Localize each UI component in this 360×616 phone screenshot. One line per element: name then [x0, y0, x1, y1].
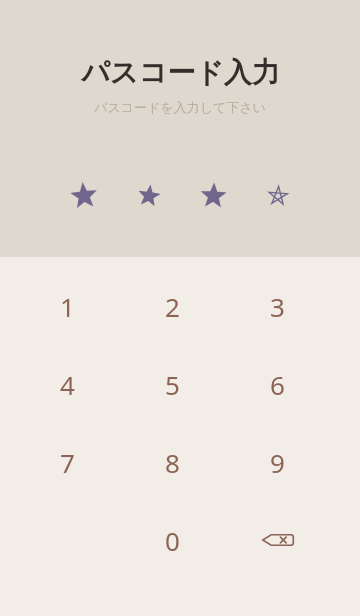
staticText: 5 — [165, 367, 180, 402]
staticText: 7 — [60, 445, 75, 480]
button[interactable]: 7 — [15, 423, 120, 501]
staticText: パスコード入力 — [81, 55, 280, 90]
staticText: 2 — [165, 289, 180, 324]
staticText: 6 — [270, 367, 285, 402]
button[interactable]: 2 — [120, 267, 225, 345]
button[interactable]: 6 — [225, 345, 330, 423]
staticText: 8 — [165, 445, 180, 480]
button[interactable]: 4 — [15, 345, 120, 423]
staticText: 3 — [270, 289, 285, 324]
button[interactable]: 3 — [225, 267, 330, 345]
button[interactable]: 1 — [15, 267, 120, 345]
button[interactable]: 9 — [225, 423, 330, 501]
staticText: 1 — [60, 289, 75, 324]
button[interactable]: 5 — [120, 345, 225, 423]
button[interactable]: 0 — [120, 501, 225, 579]
staticText: 9 — [270, 445, 285, 480]
button[interactable]: Delete — [225, 501, 330, 579]
staticText: 4 — [60, 367, 75, 402]
staticText: 0 — [165, 523, 180, 558]
button[interactable]: 8 — [120, 423, 225, 501]
staticText: パスコードを入力して下さい — [94, 99, 266, 115]
